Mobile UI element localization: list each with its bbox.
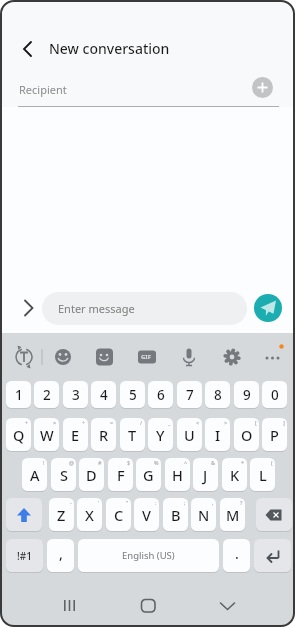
button[interactable]: 1: [6, 381, 31, 408]
button[interactable]: B: [163, 498, 188, 531]
button[interactable]: [19, 299, 37, 317]
button[interactable]: 7: [177, 381, 202, 408]
staticText: N: [198, 505, 210, 525]
button[interactable]: Z: [49, 498, 74, 531]
button[interactable]: G: [136, 458, 161, 491]
staticText: @: [69, 459, 74, 466]
button[interactable]: N: [191, 498, 216, 531]
button[interactable]: 2: [34, 381, 59, 408]
staticText: %: [154, 459, 159, 466]
button[interactable]: J: [193, 458, 218, 491]
staticText: 9: [243, 386, 251, 404]
button[interactable]: English (US): [78, 539, 219, 572]
button[interactable]: C: [106, 498, 131, 531]
staticText: :: [155, 499, 157, 506]
button[interactable]: I: [205, 418, 230, 451]
staticText: D: [86, 465, 97, 485]
button[interactable]: [252, 77, 273, 98]
button[interactable]: A: [22, 458, 47, 491]
staticText: .: [235, 544, 239, 563]
staticText: C: [114, 505, 124, 525]
button[interactable]: [254, 539, 291, 572]
staticText: R: [99, 425, 109, 445]
button[interactable]: [41, 591, 112, 626]
staticText: I: [215, 425, 221, 445]
staticText: 8: [214, 386, 222, 404]
button[interactable]: D: [79, 458, 104, 491]
button[interactable]: ,: [47, 539, 74, 572]
button[interactable]: 6: [148, 381, 173, 408]
button[interactable]: F: [108, 458, 133, 491]
staticText: 1: [15, 386, 23, 404]
staticText: E: [71, 425, 80, 445]
staticText: 2: [43, 386, 51, 404]
staticText: =: [110, 419, 114, 426]
staticText: $: [127, 459, 131, 466]
staticText: Enter message: [58, 301, 135, 316]
button[interactable]: U: [177, 418, 202, 451]
button[interactable]: [256, 498, 292, 531]
button[interactable]: E: [63, 418, 88, 451]
button[interactable]: 5: [120, 381, 145, 408]
staticText: +: [25, 419, 29, 426]
staticText: ÷: [82, 419, 86, 426]
button[interactable]: !#1: [6, 539, 43, 572]
staticText: ,: [212, 499, 214, 506]
staticText: (: [271, 459, 273, 466]
staticText: ;: [184, 499, 186, 506]
button[interactable]: P: [262, 418, 287, 451]
staticText: ?: [240, 499, 243, 506]
staticText: Recipient: [19, 82, 67, 97]
staticText: 3: [72, 386, 80, 404]
button[interactable]: T: [120, 418, 145, 451]
button[interactable]: .: [223, 539, 250, 572]
staticText: Y: [156, 425, 165, 445]
staticText: O: [241, 425, 253, 445]
staticText: A: [30, 465, 40, 485]
staticText: Q: [13, 425, 25, 445]
staticText: [: [255, 419, 257, 426]
button[interactable]: [17, 39, 39, 59]
staticText: V: [142, 505, 151, 525]
staticText: Z: [57, 505, 66, 525]
staticText: English (US): [122, 549, 175, 562]
button[interactable]: S: [51, 458, 76, 491]
staticText: New conversation: [49, 39, 170, 58]
button[interactable]: 8: [205, 381, 230, 408]
button[interactable]: X: [77, 498, 102, 531]
button[interactable]: V: [134, 498, 159, 531]
button[interactable]: L: [250, 458, 275, 491]
button[interactable]: M: [220, 498, 245, 531]
button[interactable]: R: [91, 418, 116, 451]
button[interactable]: O: [234, 418, 259, 451]
staticText: 4: [100, 386, 108, 404]
staticText: &: [211, 459, 216, 466]
staticText: ': [98, 499, 100, 506]
staticText: S: [60, 465, 68, 485]
button[interactable]: Y: [148, 418, 173, 451]
staticText: U: [184, 425, 195, 445]
button[interactable]: Q: [6, 418, 31, 451]
button[interactable]: 9: [234, 381, 259, 408]
button[interactable]: 4: [91, 381, 116, 408]
staticText: M: [226, 505, 240, 525]
button[interactable]: Enter message: [42, 292, 247, 325]
staticText: #: [98, 459, 102, 466]
staticText: >: [224, 419, 228, 426]
button[interactable]: [254, 294, 282, 322]
staticText: 7: [186, 386, 194, 404]
button[interactable]: [112, 591, 184, 626]
staticText: !: [43, 459, 45, 466]
button[interactable]: 3: [63, 381, 88, 408]
button[interactable]: [6, 498, 42, 531]
button[interactable]: W: [34, 418, 59, 451]
button[interactable]: 0: [262, 381, 287, 408]
button[interactable]: K: [222, 458, 247, 491]
staticText: B: [171, 505, 181, 525]
staticText: P: [270, 425, 279, 445]
staticText: ,: [59, 544, 63, 563]
staticText: F: [117, 465, 125, 485]
staticText: 5: [129, 386, 137, 404]
button[interactable]: H: [165, 458, 190, 491]
button[interactable]: [184, 591, 256, 626]
